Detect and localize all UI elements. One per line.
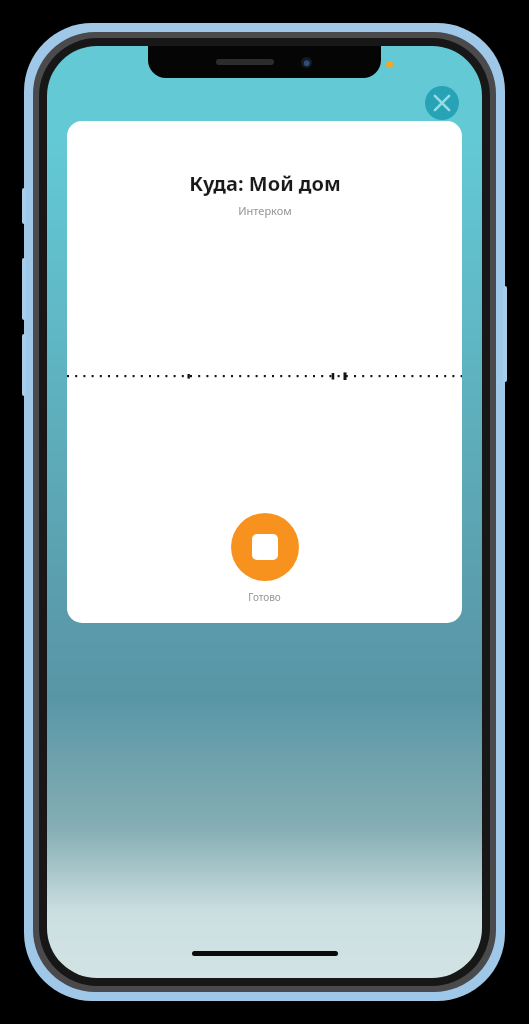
staticText: Интерком bbox=[238, 203, 292, 218]
staticText: Готово bbox=[248, 590, 281, 604]
staticText: Куда: Мой дом bbox=[189, 170, 341, 197]
button[interactable]: Стоп bbox=[231, 513, 299, 581]
button[interactable]: Закрыть bbox=[425, 86, 459, 120]
